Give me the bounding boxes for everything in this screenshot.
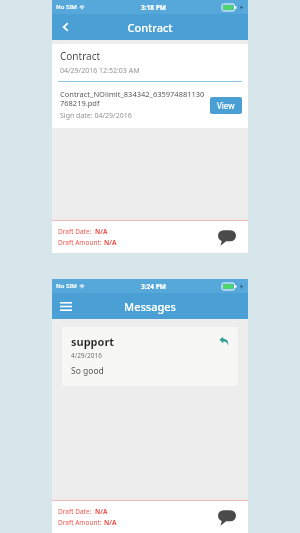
button[interactable]: Contract_NOlimit_834342_6359748811307682… [60, 89, 242, 121]
staticText: N/A [104, 238, 117, 247]
staticText: 4/29/2016 [71, 351, 102, 360]
staticText: Draft Amount: [58, 238, 104, 247]
staticText: Contract [60, 49, 101, 63]
staticText: N/A [95, 227, 108, 236]
staticText: Sign date: 04/29/2016 [60, 111, 132, 121]
staticText: N/A [104, 518, 117, 527]
button[interactable]: View [210, 97, 242, 114]
staticText: No SIM [56, 282, 77, 290]
button[interactable]: Chat [216, 226, 238, 248]
staticText: 3:18 PM [141, 3, 166, 12]
button[interactable]: support [62, 327, 238, 386]
staticText: So good [71, 365, 104, 377]
staticText: View [217, 100, 235, 111]
staticText: No SIM [56, 3, 77, 11]
staticText: N/A [95, 507, 108, 516]
button[interactable]: Reply [218, 335, 230, 347]
button[interactable]: Back [52, 14, 80, 40]
staticText: Draft Date: [58, 227, 95, 236]
staticText: 04/29/2016 12:52:03 AM [60, 66, 140, 76]
staticText: Draft Amount: [58, 518, 104, 527]
staticText: Contract_NOlimit_834342_6359748811307682… [60, 89, 206, 109]
staticText: 3:24 PM [141, 282, 166, 291]
staticText: support [71, 334, 115, 349]
button[interactable]: Chat [216, 506, 238, 528]
staticText: Messages [124, 299, 176, 314]
staticText: Contract [127, 20, 173, 35]
staticText: Draft Date: [58, 507, 95, 516]
button[interactable]: Menu [52, 293, 80, 319]
